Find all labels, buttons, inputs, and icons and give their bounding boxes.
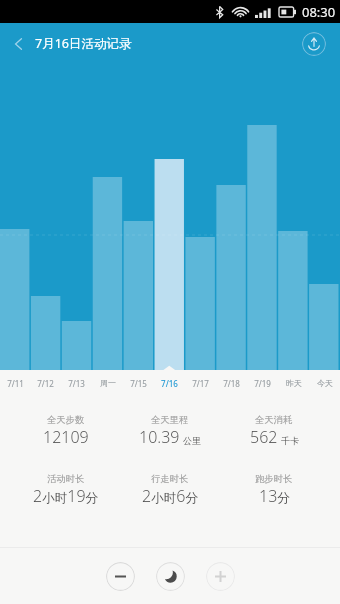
button[interactable]: Sleep mode: [156, 562, 185, 591]
staticText: 12109: [43, 426, 89, 448]
staticText: 跑步时长: [255, 473, 293, 485]
button[interactable]: 全天消耗: [222, 414, 326, 448]
button[interactable]: Share: [302, 32, 326, 56]
staticText: 7/15: [130, 378, 147, 389]
staticText: 7/16: [161, 378, 178, 389]
button[interactable]: 全天步数: [14, 414, 118, 448]
button[interactable]: 今天: [309, 378, 340, 388]
staticText: 7月16日活动记录: [35, 35, 132, 52]
staticText: 08:30: [302, 3, 336, 21]
staticText: 7/13: [68, 378, 85, 389]
button[interactable]: 7/11: [0, 378, 30, 389]
button[interactable]: 7/18: [216, 378, 247, 389]
staticText: 7/19: [254, 378, 271, 389]
staticText: 今天: [317, 378, 333, 388]
staticText: 7/11: [7, 378, 24, 389]
staticText: 千卡: [281, 435, 299, 446]
button[interactable]: 7/12: [30, 378, 61, 389]
staticText: 活动时长: [47, 473, 85, 485]
staticText: 全天里程: [151, 414, 189, 426]
button[interactable]: 活动时长: [14, 473, 118, 507]
staticText: 全天步数: [47, 414, 85, 426]
staticText: 7/18: [223, 378, 240, 389]
staticText: 全天消耗: [255, 414, 293, 426]
staticText: 7/17: [192, 378, 209, 389]
staticText: 13分: [259, 485, 290, 507]
staticText: 周一: [100, 378, 116, 388]
button[interactable]: 全天里程: [118, 414, 222, 448]
button[interactable]: Previous day: [106, 562, 135, 591]
button[interactable]: 7/17: [185, 378, 216, 389]
button[interactable]: 昨天: [278, 378, 309, 388]
button[interactable]: 7/19: [247, 378, 278, 389]
staticText: 562: [250, 426, 278, 448]
button[interactable]: Next day: [206, 562, 235, 591]
staticText: 公里: [183, 435, 201, 446]
button[interactable]: 7/16: [154, 378, 185, 389]
button[interactable]: 行走时长: [118, 473, 222, 507]
button[interactable]: 7/15: [123, 378, 154, 389]
staticText: 7/12: [37, 378, 54, 389]
button[interactable]: Back: [0, 27, 142, 60]
staticText: 10.39: [139, 426, 180, 448]
button[interactable]: 跑步时长: [222, 473, 326, 507]
staticText: 2小时6分: [142, 485, 199, 507]
staticText: 昨天: [286, 378, 302, 388]
staticText: 2小时19分: [33, 485, 99, 507]
staticText: 行走时长: [151, 473, 189, 485]
button[interactable]: 周一: [92, 378, 123, 388]
button[interactable]: 7/13: [61, 378, 92, 389]
